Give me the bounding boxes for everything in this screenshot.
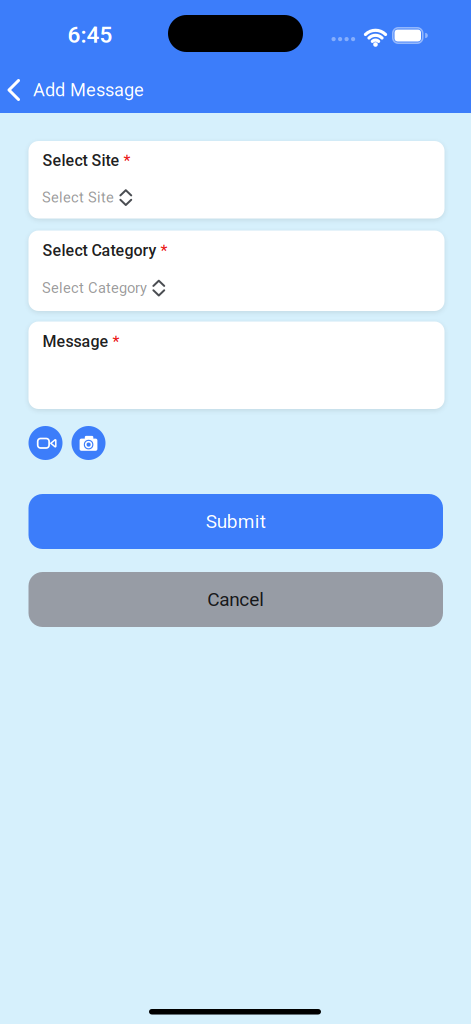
staticText: * xyxy=(123,151,130,170)
button[interactable]: Take photo xyxy=(71,426,105,460)
staticText: Select Site xyxy=(42,151,119,170)
button[interactable]: Cancel xyxy=(28,572,443,627)
staticText: * xyxy=(112,332,119,351)
staticText: Select Category xyxy=(42,241,156,260)
button[interactable]: Back xyxy=(6,78,22,101)
staticText: Cancel xyxy=(207,588,264,611)
button[interactable]: Submit xyxy=(28,494,443,549)
button[interactable]: Select Site xyxy=(42,185,430,209)
staticText: * xyxy=(160,241,167,260)
button[interactable]: Record video xyxy=(28,426,62,460)
staticText: 6:45 xyxy=(67,22,112,48)
staticText: Message xyxy=(42,332,108,351)
staticText: Submit xyxy=(206,510,266,533)
button[interactable]: Select Category xyxy=(42,276,430,300)
staticText: Add Message xyxy=(33,79,144,101)
staticText: Select Category xyxy=(42,279,147,296)
staticText: Select Site xyxy=(42,189,114,206)
